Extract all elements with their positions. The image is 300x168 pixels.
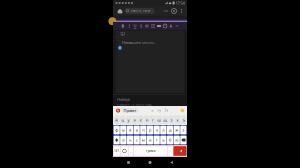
button[interactable]: A xyxy=(168,22,174,30)
button[interactable]: . xyxy=(168,146,173,156)
staticText: 17:54 xyxy=(175,0,184,6)
staticText: Тк xyxy=(151,109,153,112)
button[interactable]: More formatting xyxy=(174,22,180,30)
staticText: Важное, папка xyxy=(131,9,150,13)
button[interactable]: Важное, папка xyxy=(124,8,154,14)
button[interactable]: л xyxy=(160,126,166,134)
staticText: ь xyxy=(162,137,164,143)
staticText: ж xyxy=(175,127,178,133)
button[interactable]: ь xyxy=(160,136,166,144)
button[interactable]: Bulleted list xyxy=(150,22,156,30)
button[interactable]: е xyxy=(138,116,144,124)
staticText: Русский xyxy=(146,149,156,153)
staticText: ц xyxy=(121,117,123,123)
button[interactable]: м xyxy=(140,136,146,144)
button[interactable]: ъ xyxy=(181,116,186,124)
button[interactable]: Enter xyxy=(173,146,186,156)
button[interactable]: Home xyxy=(144,157,156,168)
button[interactable]: х xyxy=(175,116,180,124)
staticText: B xyxy=(121,23,124,29)
button[interactable]: у xyxy=(126,116,131,124)
button[interactable]: B xyxy=(120,22,126,30)
button[interactable]: щ xyxy=(162,116,168,124)
button[interactable]: Recent apps xyxy=(122,157,134,168)
button[interactable]: Account xyxy=(169,6,178,16)
button[interactable]: д xyxy=(167,126,173,134)
staticText: х xyxy=(176,117,178,123)
button[interactable]: с xyxy=(133,136,140,144)
staticText: э xyxy=(182,127,184,133)
button[interactable]: ну xyxy=(155,106,162,115)
button[interactable]: г xyxy=(150,116,156,124)
button[interactable]: More options xyxy=(178,6,184,16)
button[interactable]: Shift xyxy=(113,136,120,144)
staticText: с xyxy=(136,137,138,143)
staticText: а xyxy=(136,127,138,133)
button[interactable]: Emoji xyxy=(162,22,168,30)
staticText: г xyxy=(152,117,154,123)
button[interactable]: Emoji keyboard xyxy=(121,146,128,156)
button[interactable]: и xyxy=(147,136,153,144)
button[interactable]: Русский xyxy=(134,146,168,156)
button[interactable]: ш xyxy=(156,116,162,124)
staticText: I xyxy=(128,23,129,29)
button[interactable]: Insert link xyxy=(156,22,162,30)
button[interactable]: б xyxy=(167,136,173,144)
button[interactable]: о xyxy=(153,126,160,134)
button[interactable]: ю xyxy=(174,136,180,144)
button[interactable]: ж xyxy=(174,126,180,134)
button[interactable]: ф xyxy=(113,126,120,134)
staticText: м xyxy=(142,137,145,143)
button[interactable]: За xyxy=(162,106,169,115)
staticText: ю xyxy=(175,137,178,143)
staticText: !#1 xyxy=(114,149,119,153)
button[interactable]: э xyxy=(180,126,186,134)
button[interactable]: Keyboard settings xyxy=(115,106,122,115)
staticText: и xyxy=(149,137,151,143)
staticText: изменено 15 минут назад xyxy=(117,103,152,106)
staticText: ф xyxy=(115,127,118,133)
staticText: A xyxy=(169,23,172,29)
button[interactable]: р xyxy=(147,126,153,134)
staticText: U xyxy=(133,23,136,28)
button[interactable]: к xyxy=(132,116,137,124)
staticText: п xyxy=(142,127,144,133)
staticText: щ xyxy=(163,117,167,123)
staticText: ъ xyxy=(183,117,185,123)
button[interactable]: U xyxy=(132,22,138,30)
staticText: ч xyxy=(129,137,131,143)
button[interactable]: з xyxy=(169,116,174,124)
button[interactable]: !#1 xyxy=(113,146,120,156)
staticText: За xyxy=(164,109,167,112)
button[interactable]: S xyxy=(138,22,144,30)
button[interactable]: Тк xyxy=(148,106,155,115)
button[interactable]: Home xyxy=(115,6,124,16)
button[interactable]: ч xyxy=(127,136,133,144)
button[interactable]: Привет xyxy=(122,108,139,113)
button[interactable]: в xyxy=(127,126,133,134)
staticText: у xyxy=(128,117,130,123)
button[interactable]: п xyxy=(140,126,146,134)
button[interactable]: н xyxy=(144,116,150,124)
staticText: й xyxy=(115,117,117,123)
staticText: S xyxy=(140,23,142,29)
button[interactable]: Backspace xyxy=(180,136,186,144)
button[interactable]: Emoji xyxy=(179,106,185,115)
button[interactable]: , xyxy=(128,146,133,156)
button[interactable]: ы xyxy=(120,126,126,134)
staticText: Привет xyxy=(124,108,137,113)
button[interactable]: Back xyxy=(165,157,177,168)
button[interactable]: ц xyxy=(120,116,125,124)
button[interactable]: I xyxy=(126,22,132,30)
button[interactable]: Go xyxy=(162,6,169,16)
staticText: ну xyxy=(157,109,160,112)
staticText: Наверх xyxy=(117,97,130,102)
button[interactable]: т xyxy=(153,136,160,144)
button[interactable]: а xyxy=(133,126,140,134)
staticText: з xyxy=(170,117,172,123)
staticText: Напишите что-то… xyxy=(122,40,156,45)
button[interactable]: Align xyxy=(144,22,150,30)
button[interactable]: й xyxy=(113,116,119,124)
staticText: н xyxy=(146,117,148,123)
button[interactable]: я xyxy=(120,136,126,144)
